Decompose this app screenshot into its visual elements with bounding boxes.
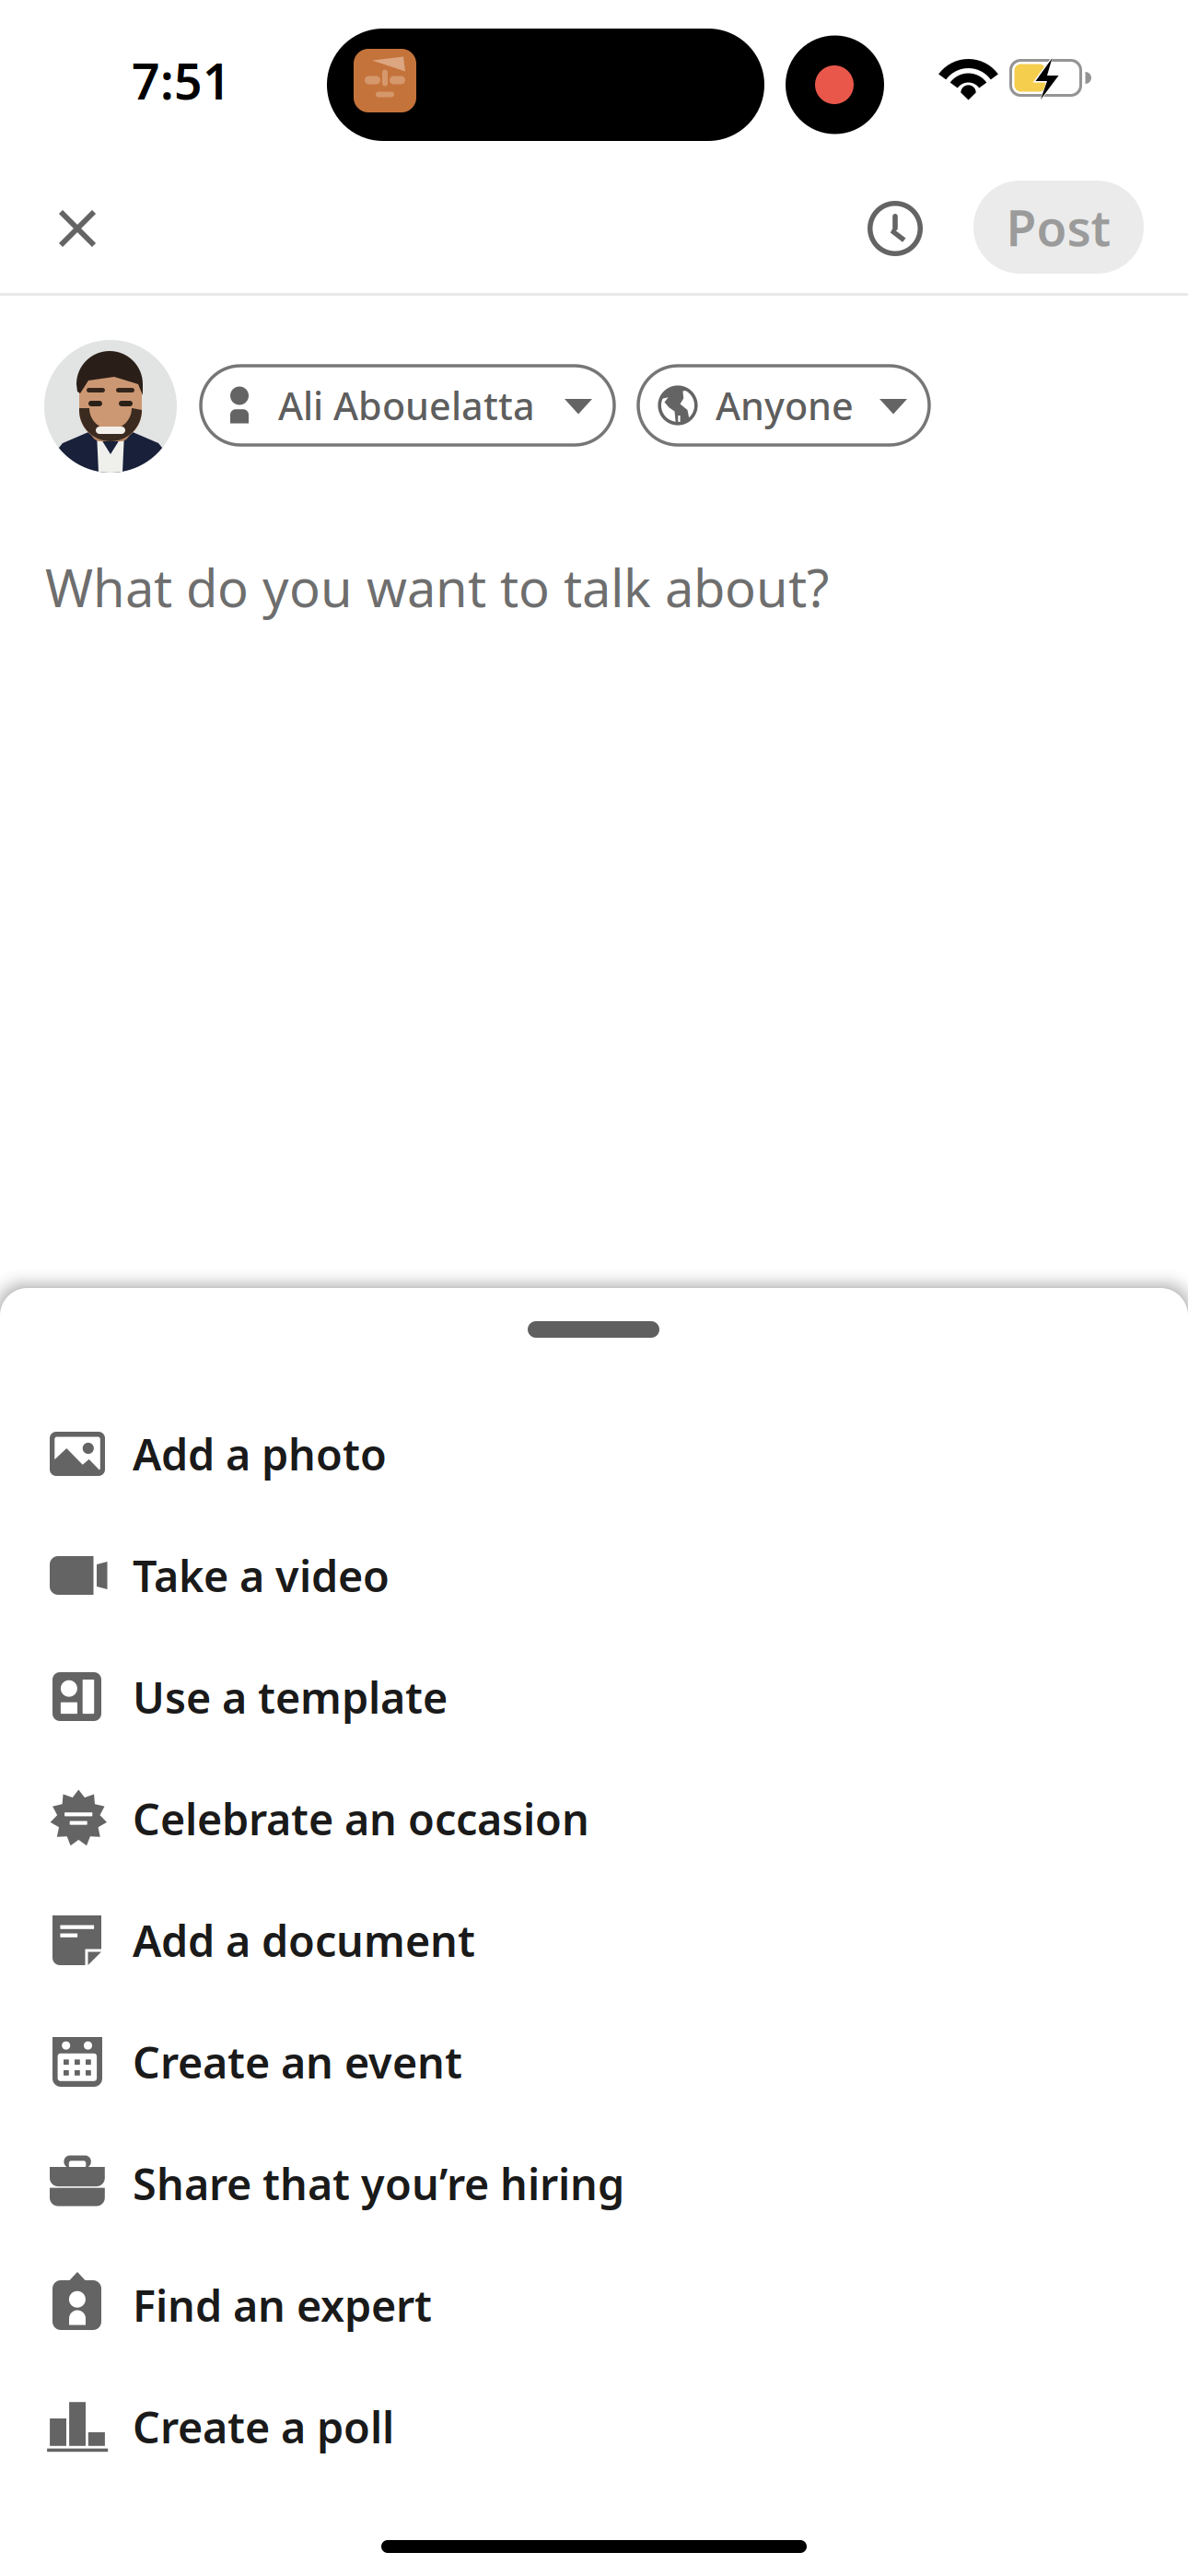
- staticText: What do you want to talk about?: [45, 553, 829, 621]
- staticText: Add a photo: [133, 1425, 387, 1482]
- staticText: Ali Abouelatta: [278, 380, 535, 431]
- button[interactable]: Celebrate an occasion: [0, 1758, 1188, 1879]
- button[interactable]: Schedule post: [855, 188, 936, 269]
- staticText: 7:51: [132, 48, 231, 113]
- staticText: Share that you’re hiring: [133, 2155, 624, 2212]
- button[interactable]: Anyone: [638, 366, 929, 445]
- staticText: Add a document: [133, 1912, 475, 1969]
- button[interactable]: Take a video: [0, 1515, 1188, 1636]
- button[interactable]: Create an event: [0, 2001, 1188, 2123]
- staticText: Celebrate an occasion: [133, 1790, 589, 1847]
- staticText: Create an event: [133, 2033, 462, 2090]
- staticText: Create a poll: [133, 2398, 394, 2455]
- staticText: Use a template: [133, 1669, 448, 1726]
- button[interactable]: Add a photo: [0, 1393, 1188, 1515]
- button[interactable]: Post: [973, 181, 1144, 274]
- button[interactable]: Use a template: [0, 1636, 1188, 1758]
- button[interactable]: Share that you’re hiring: [0, 2123, 1188, 2244]
- staticText: Find an expert: [133, 2277, 432, 2334]
- button[interactable]: Close: [33, 184, 122, 273]
- button[interactable]: Find an expert: [0, 2244, 1188, 2366]
- staticText: Anyone: [716, 380, 854, 431]
- button[interactable]: Add a document: [0, 1879, 1188, 2001]
- staticText: Post: [1006, 194, 1111, 260]
- button[interactable]: Ali Abouelatta: [201, 366, 614, 445]
- button[interactable]: Create a poll: [0, 2366, 1188, 2488]
- staticText: Take a video: [133, 1547, 390, 1604]
